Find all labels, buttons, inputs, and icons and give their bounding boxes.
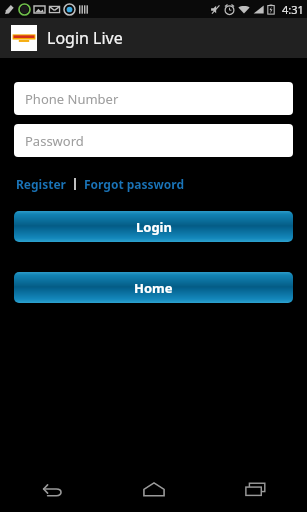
staticText: 4:31 — [282, 2, 304, 17]
staticText: Login Live — [47, 27, 123, 49]
button[interactable]: Home — [103, 466, 205, 512]
staticText: Login — [136, 218, 172, 236]
button[interactable]: Home — [14, 272, 293, 303]
staticText: Phone Number — [25, 90, 119, 108]
button[interactable]: Recent apps — [205, 466, 307, 512]
button[interactable]: Forgot password — [82, 174, 187, 194]
button[interactable]: Password — [14, 124, 293, 157]
staticText: Forgot password — [84, 176, 185, 192]
button[interactable]: Register — [14, 174, 68, 194]
button[interactable]: Login — [14, 211, 293, 242]
staticText: Register — [16, 176, 66, 192]
button[interactable]: Back — [0, 466, 103, 512]
staticText: Home — [134, 279, 173, 297]
staticText: Password — [25, 132, 84, 150]
button[interactable]: Phone Number — [14, 82, 293, 115]
